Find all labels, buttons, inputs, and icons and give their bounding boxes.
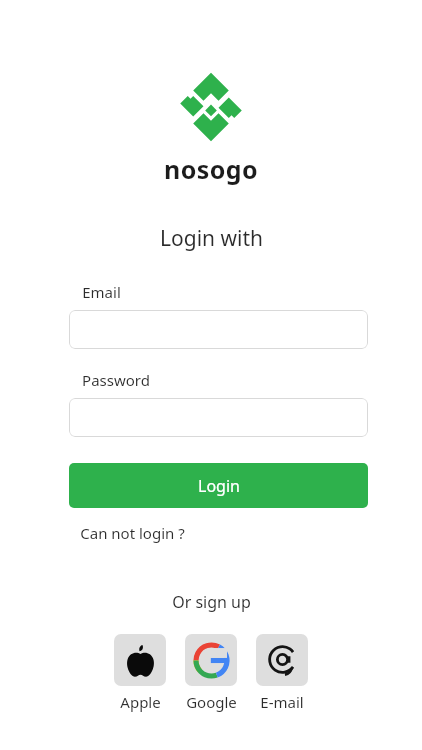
staticText: E-mail [260, 692, 304, 712]
button[interactable]: Text input field [69, 310, 368, 349]
button[interactable]: Sign up with Apple [114, 634, 166, 712]
staticText: Password [82, 370, 150, 390]
staticText: Google [186, 692, 237, 712]
staticText: Or sign up [172, 591, 251, 613]
button[interactable]: Text input field [69, 398, 368, 437]
staticText: Can not login ? [80, 523, 185, 543]
staticText: Email [82, 282, 121, 302]
staticText: Login [198, 475, 240, 497]
staticText: nosogo [164, 152, 258, 186]
button[interactable]: Sign up with E-mail [256, 634, 308, 712]
staticText: Login with [160, 224, 263, 253]
button[interactable]: Login [69, 463, 368, 508]
button[interactable]: Sign up with Google [185, 634, 237, 712]
button[interactable]: Can not login ? [80, 523, 185, 543]
staticText: Apple [120, 692, 161, 712]
